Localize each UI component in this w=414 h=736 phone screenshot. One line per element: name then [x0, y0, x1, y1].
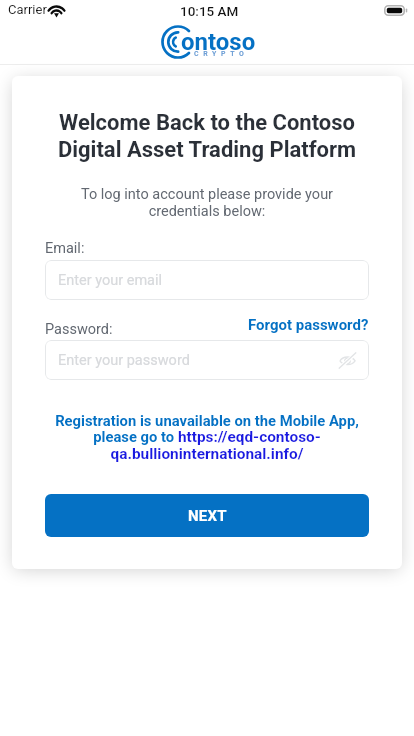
staticText: Carrier: [8, 2, 47, 17]
button[interactable]: Enter your email: [45, 260, 369, 300]
button[interactable]: Enter your password: [45, 340, 369, 380]
button[interactable]: Registration is unavailable on the Mobil…: [45, 412, 369, 463]
staticText: Welcome Back to the Contoso Digital Asse…: [45, 110, 369, 162]
button[interactable]: Show password: [338, 352, 357, 369]
button[interactable]: Forgot password?: [45, 316, 369, 334]
staticText: Enter your password: [58, 352, 190, 369]
staticText: 10:15 AM: [180, 3, 239, 19]
button[interactable]: NEXT: [45, 494, 369, 537]
staticText: Enter your email: [58, 272, 163, 289]
staticText: Email:: [45, 240, 85, 257]
staticText: CRYPTO: [194, 50, 249, 58]
staticText: To log into account please provide your …: [45, 186, 369, 220]
staticText: NEXT: [188, 507, 227, 525]
staticText: ontoso: [181, 28, 256, 56]
staticText: Forgot password?: [248, 316, 369, 334]
staticText: Password:: [45, 321, 113, 338]
